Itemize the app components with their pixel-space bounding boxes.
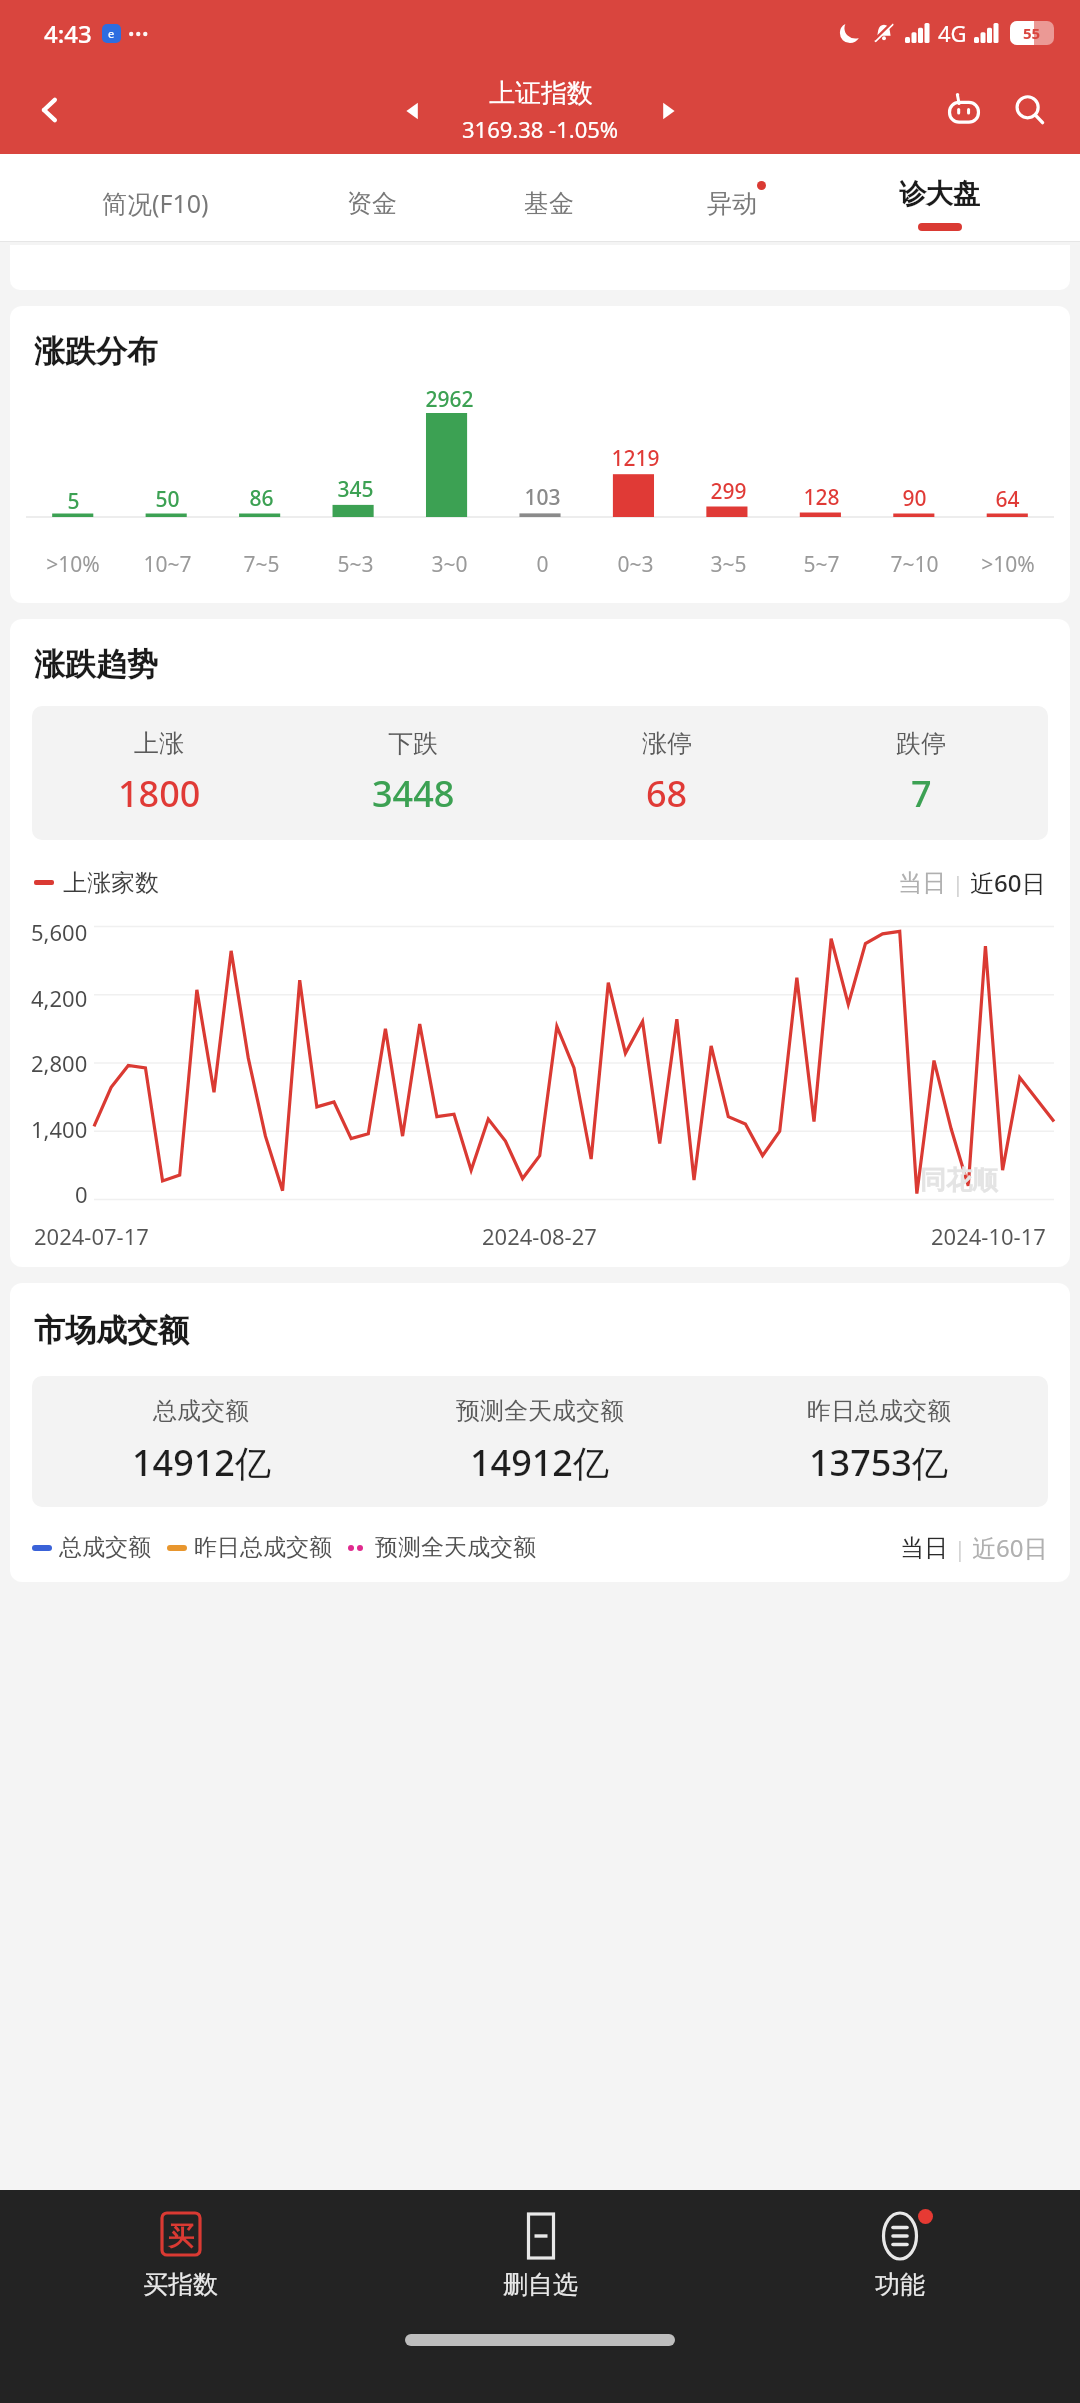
staticText: 1219 (611, 444, 660, 473)
staticText: 3~5 (710, 550, 747, 579)
staticText: 总成交额 (153, 1396, 249, 1426)
button[interactable]: 近60日 (970, 866, 1046, 899)
staticText: 4G (938, 18, 967, 48)
staticText: 128 (803, 483, 840, 512)
button[interactable]: 近60日 (972, 1531, 1048, 1564)
staticText: 299 (710, 477, 747, 506)
staticText: 预测全天成交额 (375, 1533, 536, 1562)
staticText: 2024-08-27 (482, 1221, 597, 1251)
staticText: 3~0 (431, 550, 468, 579)
button[interactable]: 资金 (283, 154, 460, 242)
staticText: 2962 (425, 385, 474, 414)
staticText: 上涨 (134, 728, 184, 759)
staticText: 86 (249, 484, 274, 513)
staticText: 64 (995, 485, 1020, 514)
staticText: 103 (524, 483, 561, 512)
button[interactable]: 简况(F10) (28, 154, 283, 242)
staticText: 近60日 (970, 866, 1046, 899)
staticText: | (946, 868, 970, 898)
staticText: 7~5 (243, 550, 280, 579)
button[interactable]: Previous (390, 88, 436, 134)
staticText: 删自选 (503, 2269, 578, 2300)
staticText: 5~7 (803, 550, 840, 579)
staticText: 0 (75, 1179, 88, 1209)
staticText: 上证指数 (489, 77, 593, 110)
staticText: 90 (902, 484, 927, 513)
staticText: 功能 (875, 2269, 925, 2300)
staticText: 2,800 (31, 1048, 88, 1078)
staticText: 4:43 (44, 17, 92, 50)
staticText: 总成交额 (59, 1533, 151, 1562)
button[interactable]: 买 (0, 2190, 360, 2320)
staticText: 0~3 (617, 550, 654, 579)
staticText: 买 (168, 2220, 194, 2253)
staticText: 同花顺 (920, 1164, 998, 1197)
staticText: 当日 (898, 868, 946, 898)
staticText: 涨停 (642, 728, 692, 759)
button[interactable]: 当日 (898, 868, 946, 898)
staticText: 3169.38 -1.05% (462, 114, 619, 144)
staticText: 市场成交额 (34, 1311, 189, 1350)
staticText: 4,200 (31, 983, 88, 1013)
staticText: >10% (46, 550, 100, 579)
staticText: 0 (536, 550, 549, 579)
button[interactable]: 当日 (900, 1533, 948, 1563)
staticText: 2024-10-17 (931, 1221, 1046, 1251)
staticText: >10% (981, 550, 1035, 579)
staticText: 资金 (347, 188, 397, 219)
button[interactable]: Next (645, 88, 691, 134)
staticText: 上涨家数 (63, 868, 159, 898)
staticText: 68 (646, 769, 688, 818)
staticText: 14912亿 (132, 1438, 271, 1487)
staticText: 近60日 (972, 1531, 1048, 1564)
button[interactable]: Search (1002, 82, 1058, 138)
button[interactable]: 删自选 (360, 2190, 720, 2320)
staticText: 3448 (372, 769, 455, 818)
staticText: 预测全天成交额 (456, 1396, 624, 1426)
staticText: 2024-07-17 (34, 1221, 149, 1251)
staticText: 异动 (707, 188, 757, 219)
staticText: 当日 (900, 1533, 948, 1563)
staticText: 简况(F10) (102, 186, 209, 220)
staticText: | (948, 1533, 972, 1563)
staticText: 7 (911, 769, 932, 818)
staticText: 10~7 (143, 550, 192, 579)
staticText: 下跌 (388, 728, 438, 759)
staticText: 7~10 (890, 550, 939, 579)
button[interactable]: 诊大盘 (826, 154, 1052, 242)
staticText: 诊大盘 (899, 177, 980, 211)
staticText: 1800 (118, 769, 201, 818)
button[interactable]: AI assistant (936, 82, 992, 138)
button[interactable]: 功能 (720, 2190, 1080, 2320)
staticText: 5,600 (31, 917, 88, 947)
staticText: 涨跌分布 (34, 332, 158, 371)
staticText: 345 (337, 475, 374, 504)
staticText: 涨跌趋势 (34, 645, 158, 684)
button[interactable]: 异动 (637, 154, 826, 242)
staticText: 5 (67, 487, 80, 516)
staticText: 55 (1023, 23, 1041, 43)
staticText: 基金 (524, 188, 574, 219)
staticText: 1,400 (31, 1114, 88, 1144)
staticText: 买指数 (143, 2269, 218, 2300)
staticText: 跌停 (896, 728, 946, 759)
staticText: 13753亿 (809, 1438, 948, 1487)
button[interactable]: Back (20, 80, 80, 140)
staticText: 14912亿 (470, 1438, 609, 1487)
button[interactable]: 基金 (460, 154, 637, 242)
staticText: 5~3 (337, 550, 374, 579)
staticText: 50 (155, 485, 180, 514)
staticText: 昨日总成交额 (807, 1396, 951, 1426)
staticText: e (108, 26, 115, 41)
staticText: 昨日总成交额 (194, 1533, 332, 1562)
